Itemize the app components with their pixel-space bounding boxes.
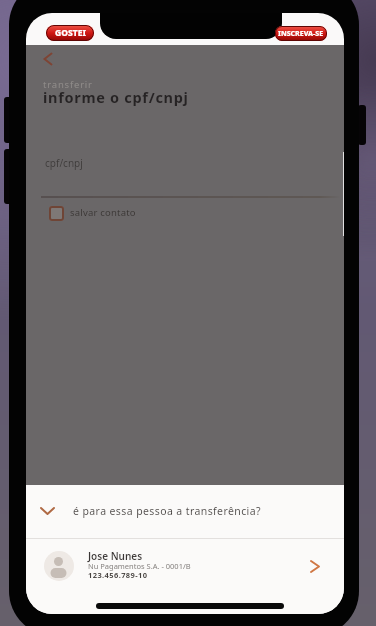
staticText: é para essa pessoa a transferência? xyxy=(73,504,261,518)
staticText: cpf/cnpj xyxy=(45,156,83,170)
button[interactable] xyxy=(49,206,64,221)
staticText: informe o cpf/cnpj xyxy=(43,87,189,107)
staticText: INSCREVA-SE xyxy=(278,29,324,39)
button[interactable]: GOSTEI xyxy=(46,25,94,41)
button[interactable]: Jose Nunes xyxy=(26,539,344,589)
staticText: salvar contato xyxy=(70,206,136,219)
staticText: 123.456.789-10 xyxy=(88,570,148,580)
staticText: transferir xyxy=(43,78,93,91)
button[interactable]: INSCREVA-SE xyxy=(275,26,327,41)
staticText: Nu Pagamentos S.A. - 0001/B xyxy=(88,561,191,571)
button[interactable]: é para essa pessoa a transferência? xyxy=(26,493,344,533)
staticText: Jose Nunes xyxy=(88,549,143,563)
staticText: GOSTEI xyxy=(55,27,86,39)
button[interactable] xyxy=(41,52,55,66)
